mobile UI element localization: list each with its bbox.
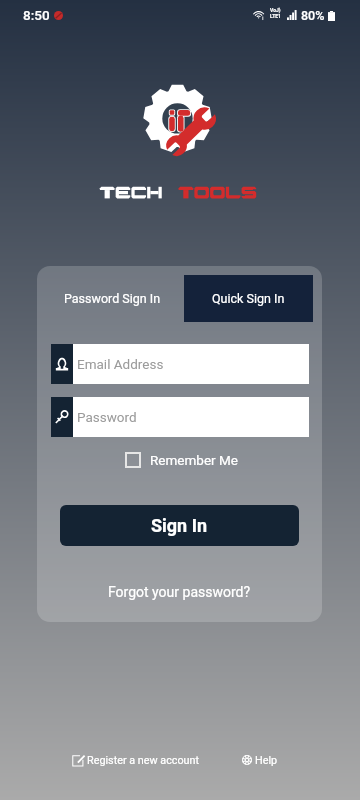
staticText: Email Address <box>77 356 164 372</box>
staticText: Password <box>77 409 137 425</box>
button[interactable]: Remember Me <box>125 452 238 468</box>
staticText: Register a new account <box>87 754 200 767</box>
staticText: Help <box>255 754 278 767</box>
button[interactable]: Register a new account <box>66 748 206 772</box>
button[interactable]: Help <box>236 748 284 772</box>
staticText: 80% <box>301 8 325 23</box>
button[interactable]: Sign In <box>60 505 299 546</box>
button[interactable]: Quick Sign In <box>184 275 313 322</box>
staticText: 8:50 <box>23 7 50 23</box>
button[interactable]: Forgot your password? <box>108 584 251 600</box>
button[interactable]: Password Sign In <box>46 275 179 322</box>
staticText: Remember Me <box>150 452 238 468</box>
staticText: VoJ) <box>270 7 281 13</box>
staticText: Sign In <box>151 515 208 536</box>
staticText: Password Sign In <box>64 291 161 306</box>
staticText: Quick Sign In <box>212 291 285 306</box>
staticText: LTE1 <box>270 13 281 19</box>
